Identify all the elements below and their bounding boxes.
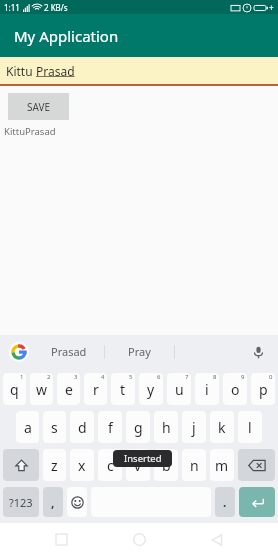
staticText: j xyxy=(192,418,196,437)
button[interactable]: k xyxy=(210,411,234,443)
button[interactable]: , xyxy=(43,487,63,517)
staticText: 2 KB/s xyxy=(44,2,68,13)
staticText: 1:11 xyxy=(4,2,20,13)
staticText: e xyxy=(65,380,73,399)
button[interactable]: Home xyxy=(122,523,156,556)
staticText: k xyxy=(218,418,226,437)
staticText: l xyxy=(248,418,252,437)
staticText: ?123 xyxy=(9,495,33,510)
button[interactable]: p xyxy=(251,373,275,405)
staticText: KittuPrasad xyxy=(4,125,56,138)
staticText: x xyxy=(78,456,86,475)
button[interactable]: Pray xyxy=(105,335,174,368)
button[interactable]: s xyxy=(43,411,66,443)
staticText: p xyxy=(259,380,268,399)
button[interactable]: r xyxy=(84,373,107,405)
staticText: Pray xyxy=(128,344,151,359)
button[interactable]: o xyxy=(223,373,247,405)
button[interactable]: u xyxy=(167,373,191,405)
button[interactable]: n xyxy=(182,449,206,481)
button[interactable]: Backspace xyxy=(238,449,275,481)
button[interactable]: h xyxy=(154,411,178,443)
button[interactable]: m xyxy=(210,449,234,481)
staticText: v xyxy=(134,456,142,475)
button[interactable]: x xyxy=(70,449,94,481)
staticText: h xyxy=(162,418,171,437)
staticText: m xyxy=(215,456,229,475)
staticText: g xyxy=(134,418,143,437)
button[interactable]: t xyxy=(111,373,135,405)
button[interactable]: Recents xyxy=(44,523,78,556)
staticText: My Application xyxy=(14,26,119,46)
button[interactable]: d xyxy=(70,411,94,443)
button[interactable]: Shift xyxy=(3,449,39,481)
staticText: s xyxy=(51,418,58,437)
staticText: 5 xyxy=(129,373,133,381)
staticText: Prasad xyxy=(36,63,75,79)
staticText: t xyxy=(120,380,126,399)
staticText: 2 xyxy=(47,373,51,381)
staticText: z xyxy=(51,456,58,475)
button[interactable]: ?123 xyxy=(3,487,39,517)
staticText: o xyxy=(231,380,240,399)
button[interactable]: Prasad xyxy=(34,335,104,368)
staticText: 0 xyxy=(269,373,273,381)
button[interactable]: z xyxy=(43,449,66,481)
button[interactable]: l xyxy=(238,411,262,443)
staticText: n xyxy=(190,456,199,475)
button[interactable]: c xyxy=(98,449,122,481)
staticText: f xyxy=(108,418,113,437)
button[interactable]: SAVE xyxy=(8,93,69,120)
staticText: y xyxy=(147,380,155,399)
button[interactable]: f xyxy=(98,411,122,443)
button[interactable]: Google xyxy=(9,342,29,362)
button[interactable]: Emoji xyxy=(67,487,87,517)
staticText: 3 xyxy=(74,373,78,381)
button[interactable]: y xyxy=(139,373,163,405)
staticText: SAVE xyxy=(27,100,51,114)
button[interactable]: b xyxy=(154,449,178,481)
staticText: Prasad xyxy=(51,344,87,359)
staticText: q xyxy=(10,380,19,399)
staticText: , xyxy=(51,494,55,510)
staticText: r xyxy=(93,380,99,399)
staticText: d xyxy=(78,418,87,437)
staticText: i xyxy=(205,380,209,399)
staticText: 7 xyxy=(185,373,189,381)
button[interactable]: g xyxy=(126,411,150,443)
staticText: + xyxy=(269,2,274,13)
staticText: Inserted xyxy=(124,452,162,465)
button[interactable]: Enter xyxy=(239,487,275,517)
button[interactable]: a xyxy=(16,411,39,443)
staticText: b xyxy=(162,456,171,475)
staticText: 6 xyxy=(157,373,161,381)
staticText: u xyxy=(175,380,184,399)
staticText: . xyxy=(223,494,227,510)
staticText: 8 xyxy=(213,373,217,381)
button[interactable]: Back xyxy=(200,523,234,556)
button[interactable]: q xyxy=(3,373,26,405)
button[interactable]: i xyxy=(195,373,219,405)
button[interactable]: . xyxy=(215,487,235,517)
staticText: 1 xyxy=(20,373,24,381)
staticText: c xyxy=(107,456,114,475)
button[interactable]: j xyxy=(182,411,206,443)
button[interactable]: w xyxy=(30,373,53,405)
staticText: w xyxy=(36,380,48,399)
button[interactable]: e xyxy=(57,373,80,405)
button[interactable]: Kittu xyxy=(0,57,278,84)
staticText: a xyxy=(24,418,32,437)
staticText: 4 xyxy=(101,373,105,381)
button[interactable]: v xyxy=(126,449,150,481)
button[interactable]: Voice input xyxy=(248,342,268,362)
staticText: Kittu xyxy=(6,63,36,79)
staticText: 9 xyxy=(241,373,245,381)
